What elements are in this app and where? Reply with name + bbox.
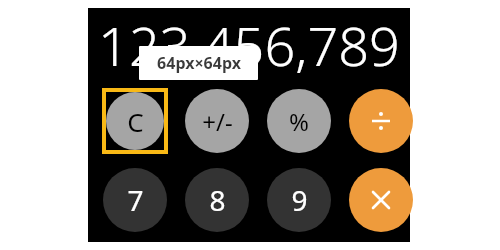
staticText: 8	[209, 181, 226, 219]
button[interactable]: +/-	[184, 88, 250, 154]
staticText: %	[289, 105, 309, 138]
staticText: C	[127, 104, 144, 139]
staticText: 64px×64px	[157, 52, 241, 74]
staticText: +/-	[202, 105, 233, 138]
button[interactable]: Divide	[348, 88, 414, 154]
button[interactable]: %	[266, 88, 332, 154]
staticText: 9	[291, 181, 308, 219]
button[interactable]: C	[102, 88, 168, 154]
button[interactable]: Multiply	[348, 167, 414, 233]
staticText: 123,456,789	[98, 8, 400, 78]
button[interactable]: 8	[184, 167, 250, 233]
staticText: 7	[127, 181, 144, 219]
button[interactable]: 9	[266, 167, 332, 233]
button[interactable]: 7	[102, 167, 168, 233]
